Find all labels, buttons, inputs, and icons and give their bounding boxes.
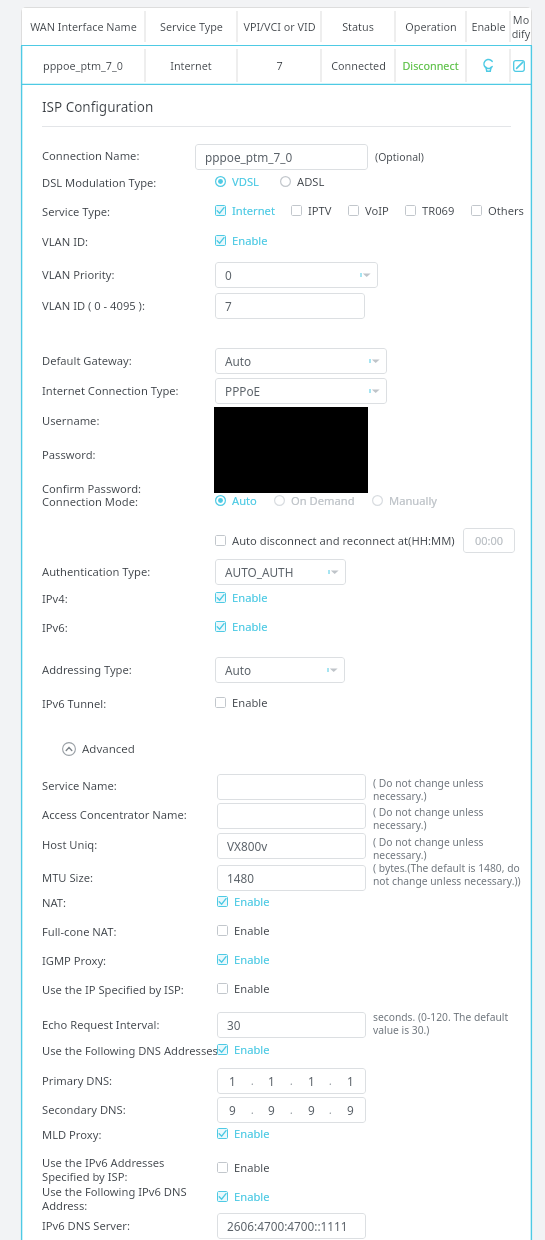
staticText: Modify — [510, 12, 532, 41]
button[interactable] — [215, 535, 226, 546]
button[interactable]: 7 — [215, 293, 365, 319]
button[interactable]: Enable — [217, 923, 270, 938]
button[interactable] — [215, 235, 226, 246]
staticText: Use the IP Specified by ISP: — [42, 982, 184, 997]
button[interactable]: Auto — [215, 657, 345, 683]
button[interactable]: ADSL — [280, 174, 325, 189]
button[interactable]: Auto disconnect and reconnect at(HH:MM) — [215, 533, 455, 548]
staticText: ADSL — [297, 174, 325, 189]
button[interactable]: Internet — [145, 46, 237, 85]
button[interactable]: 30 — [217, 1012, 366, 1038]
button[interactable]: Others — [471, 203, 524, 218]
button[interactable]: 9 — [217, 1097, 366, 1123]
button[interactable]: Enable — [217, 894, 270, 909]
staticText: 9 — [347, 1102, 354, 1118]
button[interactable]: PPPoE — [215, 378, 387, 404]
button[interactable]: Connected — [321, 46, 395, 85]
button[interactable] — [215, 621, 226, 632]
button[interactable]: AUTO_AUTH — [215, 559, 346, 585]
button[interactable]: Enable — [215, 233, 268, 248]
button[interactable]: Enable — [215, 619, 268, 634]
button[interactable]: 00:00 — [463, 528, 515, 553]
staticText: Secondary DNS: — [42, 1102, 126, 1117]
staticText: VoIP — [365, 203, 389, 218]
button[interactable]: Enable — [215, 695, 268, 710]
button[interactable]: Edit — [510, 57, 528, 75]
button[interactable]: Advanced — [62, 741, 135, 757]
button[interactable] — [348, 205, 359, 216]
button[interactable] — [217, 1162, 228, 1173]
staticText: Full-cone NAT: — [42, 924, 117, 939]
button[interactable]: VDSL — [215, 174, 259, 189]
staticText: VX800v — [227, 838, 268, 854]
button[interactable]: 1 — [217, 1068, 366, 1094]
button[interactable] — [217, 896, 228, 907]
button[interactable]: pppoe_ptm_7_0 — [195, 144, 368, 170]
button[interactable]: Enable — [217, 1189, 270, 1204]
button[interactable]: IPTV — [291, 203, 332, 218]
staticText: 00:00 — [475, 533, 504, 548]
button[interactable] — [217, 774, 366, 800]
button[interactable]: Enable — [215, 590, 268, 605]
button[interactable]: Manually — [372, 493, 438, 508]
button[interactable] — [405, 205, 416, 216]
staticText: Service Type: — [42, 204, 111, 219]
button[interactable] — [291, 205, 302, 216]
button[interactable]: Internet — [215, 203, 275, 218]
button[interactable] — [215, 205, 226, 216]
staticText: Connected — [331, 58, 386, 73]
staticText: Enable — [232, 233, 268, 248]
button[interactable]: 2606:4700:4700::1111 — [217, 1213, 366, 1239]
button[interactable]: 0 — [215, 262, 378, 288]
staticText: Advanced — [82, 741, 135, 757]
button[interactable]: Disconnect — [395, 46, 466, 85]
button[interactable]: Enable — [217, 1042, 270, 1057]
staticText: TR069 — [422, 203, 455, 218]
staticText: . — [290, 1074, 293, 1088]
button[interactable] — [217, 1044, 228, 1055]
button[interactable] — [217, 803, 366, 829]
staticText: Enable — [234, 1160, 270, 1175]
button[interactable]: Auto — [215, 493, 257, 508]
staticText: IPv6 DNS Server: — [42, 1218, 130, 1233]
staticText: Password: — [42, 447, 96, 462]
staticText: Enable — [234, 1126, 270, 1141]
staticText: MTU Size: — [42, 870, 94, 885]
button[interactable] — [215, 697, 226, 708]
button[interactable]: On Demand — [274, 493, 355, 508]
button[interactable]: 7 — [237, 46, 321, 85]
button[interactable]: Enable — [217, 1160, 270, 1175]
staticText: . — [251, 1103, 254, 1117]
button[interactable] — [217, 983, 228, 994]
button[interactable]: Auto — [215, 348, 387, 374]
staticText: VLAN ID ( 0 - 4095 ): — [42, 298, 145, 313]
button[interactable] — [217, 1128, 228, 1139]
button[interactable] — [217, 954, 228, 965]
staticText: . — [290, 1103, 293, 1117]
staticText: Use the Following IPv6 DNS Address: — [42, 1184, 202, 1213]
staticText: Enable — [234, 923, 270, 938]
staticText: Username: — [42, 413, 100, 428]
button[interactable]: VoIP — [348, 203, 389, 218]
button[interactable]: 1480 — [217, 865, 366, 891]
button[interactable] — [215, 592, 226, 603]
staticText: Use the Following DNS Addresses: — [42, 1043, 221, 1058]
button[interactable]: Enable — [466, 46, 510, 85]
staticText: NAT: — [42, 895, 67, 910]
button[interactable] — [471, 205, 482, 216]
button[interactable] — [217, 1191, 228, 1202]
staticText: AUTO_AUTH — [225, 564, 294, 580]
button[interactable] — [217, 925, 228, 936]
staticText: Access Concentrator Name: — [42, 807, 187, 822]
button[interactable]: Enable — [217, 1126, 270, 1141]
button[interactable]: Enable — [217, 952, 270, 967]
staticText: 1480 — [227, 870, 254, 886]
staticText: 9 — [268, 1102, 275, 1118]
staticText: Internet — [170, 58, 212, 73]
staticText: ( bytes.(The default is 1480, do not cha… — [373, 861, 535, 888]
button[interactable]: pppoe_ptm_7_0 — [21, 46, 145, 85]
staticText: Connection Name: — [42, 148, 140, 163]
button[interactable]: VX800v — [217, 833, 366, 859]
button[interactable]: TR069 — [405, 203, 455, 218]
button[interactable]: Enable — [217, 981, 270, 996]
